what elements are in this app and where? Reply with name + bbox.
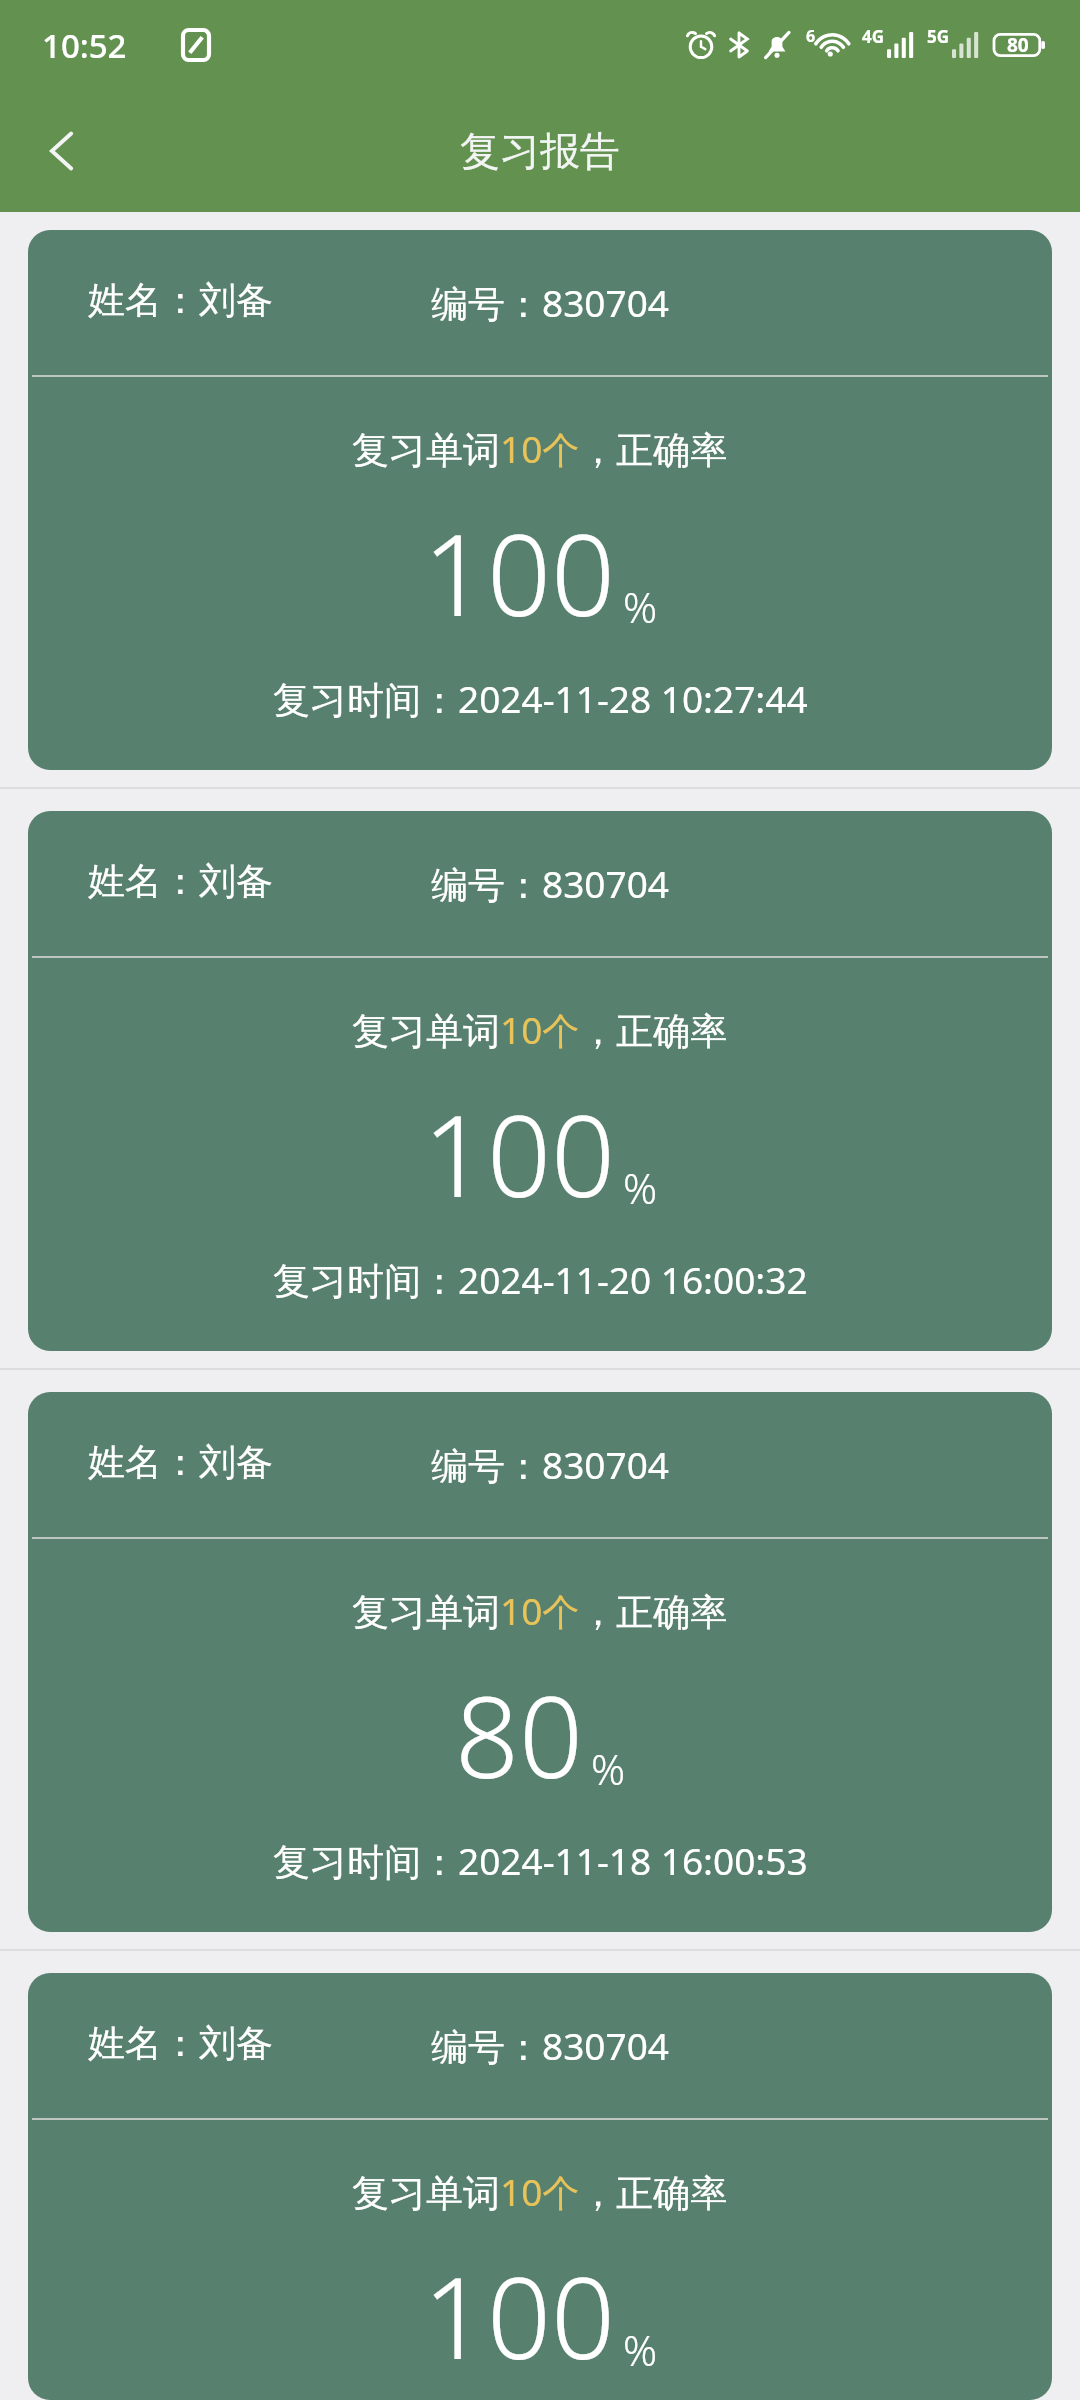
button[interactable]: Back xyxy=(20,109,104,193)
staticText: 10:52 xyxy=(42,23,127,68)
staticText: 编号：830704 xyxy=(431,858,669,909)
staticText: 复习单词10个，正确率 xyxy=(352,1585,728,1636)
staticText: % xyxy=(591,1740,626,1797)
staticText: 复习时间：2024-11-20 16:00:32 xyxy=(273,1254,808,1305)
staticText: 复习时间：2024-11-28 10:27:44 xyxy=(273,673,808,724)
button[interactable]: 姓名：刘备 xyxy=(28,1392,1052,1932)
button[interactable]: 姓名：刘备 xyxy=(28,1973,1052,2400)
button[interactable]: 姓名：刘备 xyxy=(28,230,1052,770)
staticText: 编号：830704 xyxy=(431,1439,669,1490)
staticText: 复习单词10个，正确率 xyxy=(352,423,728,474)
staticText: % xyxy=(623,1159,658,1216)
staticText: 100 xyxy=(423,1077,615,1230)
staticText: 100 xyxy=(423,2239,615,2392)
staticText: 姓名：刘备 xyxy=(88,277,273,324)
button[interactable]: 姓名：刘备 xyxy=(28,811,1052,1351)
staticText: 6 xyxy=(806,25,816,47)
staticText: 5G xyxy=(927,25,950,48)
staticText: 复习时间：2024-11-18 16:00:53 xyxy=(273,1835,808,1886)
staticText: 姓名：刘备 xyxy=(88,1439,273,1486)
staticText: 100 xyxy=(423,496,615,649)
staticText: % xyxy=(623,578,658,635)
staticText: 编号：830704 xyxy=(431,277,669,328)
staticText: % xyxy=(623,2321,658,2378)
staticText: 编号：830704 xyxy=(431,2020,669,2071)
staticText: 复习单词10个，正确率 xyxy=(352,1004,728,1055)
staticText: 姓名：刘备 xyxy=(88,858,273,905)
staticText: 复习单词10个，正确率 xyxy=(352,2166,728,2217)
staticText: 80 xyxy=(455,1658,583,1811)
staticText: 姓名：刘备 xyxy=(88,2020,273,2067)
staticText: 4G xyxy=(862,25,885,48)
staticText: 80 xyxy=(1007,32,1029,58)
staticText: 复习报告 xyxy=(460,126,620,176)
